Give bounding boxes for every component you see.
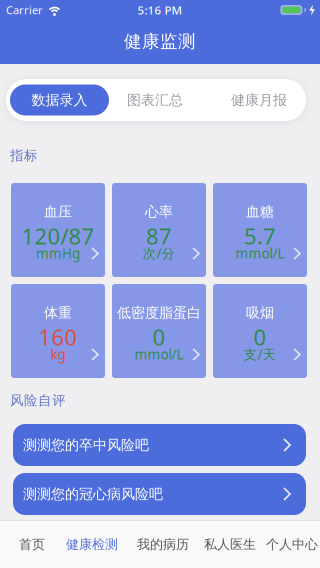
staticText: 首页 [19, 536, 45, 553]
button[interactable]: 测测您的冠心病风险吧 [13, 473, 306, 515]
staticText: 支/天 [243, 345, 276, 363]
staticText: 120/87 [21, 221, 94, 251]
staticText: Carrier [6, 2, 43, 17]
staticText: kg [50, 345, 65, 363]
button[interactable]: 体重 [11, 284, 105, 378]
staticText: 160 [38, 322, 77, 352]
button[interactable]: 血压 [11, 183, 105, 277]
button[interactable]: 吸烟 [213, 284, 307, 378]
button[interactable]: 图表汇总 [109, 91, 201, 109]
staticText: 体重 [44, 304, 72, 322]
staticText: 我的病历 [137, 536, 189, 553]
staticText: 风险自评 [10, 392, 66, 409]
staticText: 血糖 [246, 203, 274, 221]
button[interactable]: 个人中心 [264, 521, 320, 568]
staticText: 次/分 [142, 244, 175, 262]
staticText: 个人中心 [266, 536, 318, 553]
staticText: 低密度脂蛋白 [117, 304, 201, 322]
staticText: mmol/L [235, 244, 284, 262]
staticText: 图表汇总 [127, 91, 183, 109]
staticText: 87 [146, 221, 172, 251]
staticText: 私人医生 [204, 536, 256, 553]
button[interactable]: 我的病历 [128, 521, 198, 568]
staticText: 指标 [10, 147, 38, 164]
button[interactable]: 数据录入 [6, 84, 109, 115]
button[interactable]: 低密度脂蛋白 [112, 284, 206, 378]
staticText: 吸烟 [246, 304, 274, 322]
staticText: 测测您的卒中风险吧 [23, 436, 149, 454]
staticText: mmol/L [134, 345, 183, 363]
staticText: 健康月报 [231, 91, 287, 109]
staticText: 0 [253, 322, 266, 352]
button[interactable]: 健康检测 [64, 521, 120, 568]
staticText: mmHg [36, 244, 80, 262]
button[interactable]: 血糖 [213, 183, 307, 277]
staticText: 健康检测 [66, 536, 118, 553]
staticText: 心率 [145, 203, 173, 221]
staticText: 数据录入 [31, 91, 87, 109]
staticText: 5:16 PM [137, 2, 182, 18]
button[interactable]: 健康月报 [231, 91, 306, 109]
staticText: 测测您的冠心病风险吧 [23, 485, 163, 503]
button[interactable]: 心率 [112, 183, 206, 277]
staticText: 血压 [44, 203, 72, 221]
button[interactable]: 首页 [0, 521, 64, 568]
staticText: 5.7 [244, 221, 276, 251]
staticText: 0 [152, 322, 165, 352]
button[interactable]: 私人医生 [200, 521, 260, 568]
staticText: 健康监测 [124, 30, 196, 52]
button[interactable]: 测测您的卒中风险吧 [13, 424, 306, 466]
